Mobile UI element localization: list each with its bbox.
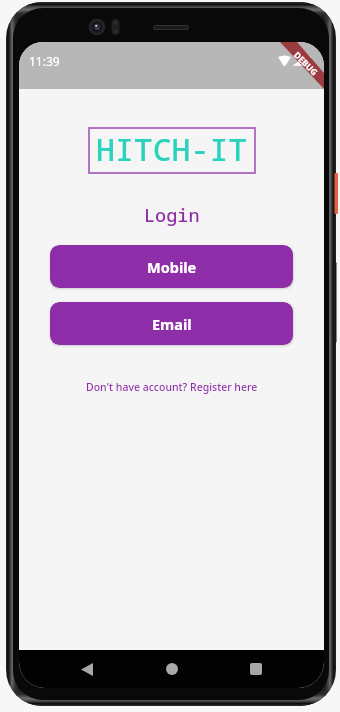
staticText: DEBUG [291,49,321,79]
button[interactable]: Recents [239,652,273,686]
staticText: Mobile [147,257,197,277]
staticText: Email [152,314,192,334]
staticText: Login [144,202,200,227]
button[interactable]: Email [50,302,293,345]
button[interactable]: Don't have account? Register here [80,376,264,398]
button[interactable]: Home [155,652,189,686]
button[interactable]: Mobile [50,245,293,288]
staticText: HITCH-IT [96,127,248,170]
button[interactable]: Back [70,652,104,686]
staticText: 11:39 [29,53,60,69]
staticText: Don't have account? Register here [86,380,258,394]
